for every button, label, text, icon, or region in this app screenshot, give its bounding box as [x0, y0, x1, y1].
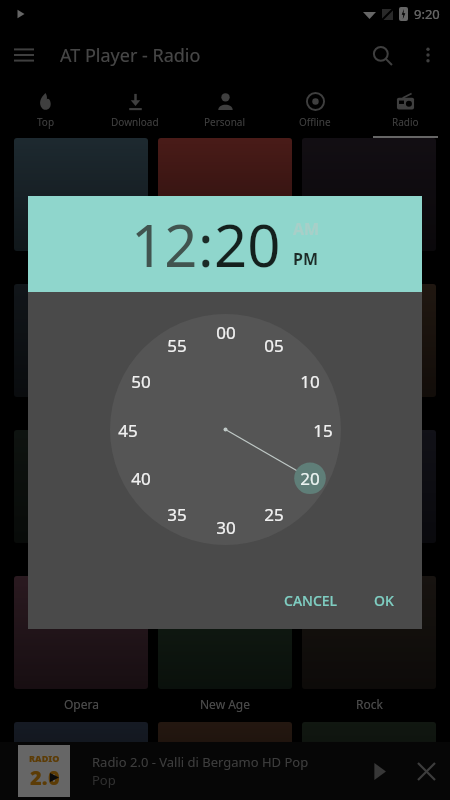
button[interactable]: 55 [159, 334, 195, 356]
button[interactable] [14, 284, 148, 397]
button[interactable]: 50 [123, 370, 159, 392]
button[interactable]: 20 [214, 205, 281, 284]
button[interactable] [158, 430, 292, 543]
button[interactable]: OK [364, 583, 404, 618]
button[interactable] [302, 576, 436, 689]
button[interactable] [14, 430, 148, 543]
button[interactable]: 10 [292, 370, 328, 392]
button[interactable] [158, 576, 292, 689]
button[interactable]: 25 [256, 503, 292, 525]
staticText: Download [111, 115, 159, 129]
staticText: 45 [118, 419, 138, 441]
staticText: 15 [313, 419, 333, 441]
staticText: Radio 2.0 - Valli di Bergamo HD Pop [92, 753, 309, 771]
button[interactable]: 35 [159, 503, 195, 525]
staticText: AT Player - Radio [60, 43, 201, 68]
button[interactable]: 12 [131, 205, 198, 284]
button[interactable] [302, 722, 436, 800]
button[interactable] [302, 138, 436, 251]
staticText: 35 [167, 503, 187, 525]
staticText: 05 [264, 334, 284, 356]
button[interactable] [14, 138, 148, 251]
button[interactable]: Radio [360, 82, 450, 138]
button[interactable]: Top [0, 82, 90, 138]
staticText: 10 [300, 370, 320, 392]
staticText: Rock [356, 696, 383, 712]
button[interactable]: 05 [256, 334, 292, 356]
staticText: 2. [30, 764, 48, 791]
staticText: Personal [204, 115, 246, 129]
button[interactable]: 00 [208, 321, 244, 343]
staticText: 00 [216, 321, 236, 343]
button[interactable]: 15 [305, 419, 341, 441]
button[interactable]: Download [90, 82, 180, 138]
staticText: Top [37, 115, 55, 129]
staticText: New Age [200, 696, 251, 712]
button[interactable] [302, 430, 436, 543]
staticText: 20 [300, 467, 320, 489]
staticText: 40 [131, 467, 151, 489]
button[interactable] [14, 722, 148, 800]
button[interactable]: Close [402, 747, 450, 795]
button[interactable]: 45 [110, 419, 146, 441]
staticText: 0 [48, 764, 60, 791]
button[interactable]: Personal [180, 82, 270, 138]
button[interactable]: CANCEL [274, 583, 348, 618]
staticText: 9:20 [414, 5, 440, 23]
staticText: : [198, 205, 214, 284]
staticText: Opera [64, 696, 99, 712]
button[interactable]: Play [356, 748, 402, 794]
button[interactable]: PM [293, 248, 319, 270]
staticText: OK [374, 591, 394, 610]
staticText: 55 [167, 334, 187, 356]
button[interactable] [158, 722, 292, 800]
button[interactable] [14, 576, 148, 689]
button[interactable]: Menu [0, 31, 48, 79]
button[interactable]: Search [358, 31, 406, 79]
button[interactable]: Offline [270, 82, 360, 138]
button[interactable]: More options [406, 33, 450, 77]
staticText: 25 [264, 503, 284, 525]
staticText: 30 [216, 516, 236, 538]
staticText: Pop [92, 771, 116, 789]
button[interactable]: 40 [123, 467, 159, 489]
staticText: 50 [131, 370, 151, 392]
staticText: Offline [299, 115, 331, 129]
staticText: CANCEL [284, 591, 338, 610]
staticText: RADIO [29, 752, 60, 764]
button[interactable] [158, 284, 292, 397]
button[interactable]: 20 [292, 467, 328, 489]
button[interactable] [158, 138, 292, 251]
staticText: Radio [392, 115, 419, 129]
button[interactable]: 30 [208, 516, 244, 538]
button[interactable]: AM [293, 218, 320, 240]
button[interactable] [302, 284, 436, 397]
